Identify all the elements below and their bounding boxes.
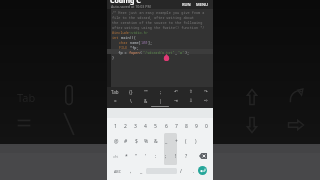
staticText: %	[144, 138, 149, 145]
staticText: Tab	[111, 89, 119, 95]
staticText: (	[140, 50, 143, 55]
staticText: );	[185, 50, 190, 55]
staticText: _	[140, 168, 143, 175]
button[interactable]: ⇨	[198, 96, 213, 105]
button[interactable]: 9	[191, 120, 201, 132]
button[interactable]: ⇩	[183, 96, 198, 105]
staticText: =	[114, 98, 117, 104]
staticText: the creation of the source to the follow…	[112, 20, 203, 25]
staticText: #include	[112, 30, 129, 35]
button[interactable]: %	[141, 135, 151, 147]
staticText: ;	[165, 153, 167, 160]
button[interactable]: @	[111, 135, 121, 147]
staticText: 3	[134, 123, 137, 130]
button[interactable]: $	[131, 135, 141, 147]
button[interactable]: ;	[153, 87, 168, 96]
button[interactable]: Enter	[198, 166, 207, 175]
staticText: fp =	[112, 50, 129, 55]
button[interactable]: MENU	[195, 1, 209, 8]
staticText: "w"	[178, 50, 185, 55]
button[interactable]: \	[123, 96, 138, 105]
button[interactable]: (	[181, 135, 191, 147]
button[interactable]: 6	[161, 120, 171, 132]
button[interactable]: ;	[161, 150, 171, 162]
button[interactable]: 3	[130, 120, 140, 132]
staticText: 2	[124, 123, 127, 130]
staticText: }	[112, 55, 115, 60]
button[interactable]: 0	[201, 120, 211, 132]
button[interactable]: ""	[138, 87, 153, 96]
button[interactable]: |	[153, 96, 168, 105]
staticText: '	[145, 153, 147, 160]
staticText: fopen	[129, 50, 140, 55]
staticText: "/sdcard/a.txt"	[143, 50, 175, 55]
staticText: _	[165, 138, 168, 145]
staticText: Coding C	[110, 0, 141, 5]
staticText: /	[180, 168, 182, 175]
staticText: ""	[144, 89, 148, 95]
staticText: main(){	[119, 35, 136, 40]
button[interactable]: )	[191, 135, 201, 147]
staticText: #	[124, 138, 128, 145]
button[interactable]: 1	[110, 120, 120, 132]
button[interactable]: ABC	[110, 165, 124, 177]
button[interactable]: _	[136, 165, 146, 177]
staticText: @	[114, 138, 119, 145]
staticText	[112, 45, 119, 50]
staticText: 0	[205, 123, 208, 130]
button[interactable]: _	[161, 135, 171, 147]
staticText: ABC	[114, 169, 121, 174]
button[interactable]: *	[121, 150, 131, 162]
button[interactable]: RUN	[181, 1, 192, 8]
staticText: |	[159, 98, 162, 104]
button[interactable]: 8	[181, 120, 191, 132]
staticText: 1	[114, 123, 117, 130]
staticText: :	[155, 153, 157, 160]
staticText: 6	[165, 123, 168, 130]
button[interactable]: 4	[140, 120, 150, 132]
staticText: *	[125, 153, 128, 160]
button[interactable]: &	[151, 135, 161, 147]
staticText: ];	[148, 40, 153, 45]
button[interactable]: =	[107, 96, 123, 105]
staticText: name[	[128, 40, 141, 45]
button[interactable]: 2	[120, 120, 130, 132]
button[interactable]: ↷	[198, 87, 213, 96]
staticText: {}	[129, 89, 133, 95]
staticText: ⇥	[174, 98, 178, 103]
button[interactable]: ,	[126, 165, 136, 177]
button[interactable]: ⇧	[183, 87, 198, 96]
button[interactable]: +	[171, 135, 181, 147]
button[interactable]: {}	[123, 87, 138, 96]
staticText: !	[175, 153, 177, 160]
button[interactable]: 5	[150, 120, 160, 132]
staticText: /* Here just an easy example you give fr…	[112, 10, 205, 15]
button[interactable]: &	[138, 96, 153, 105]
staticText: 9	[195, 123, 198, 130]
staticText: RUN	[182, 2, 191, 7]
staticText: 4	[144, 123, 147, 130]
button[interactable]: 7	[171, 120, 181, 132]
staticText: 7	[175, 123, 178, 130]
staticText: &	[154, 138, 158, 145]
button[interactable]: "	[131, 150, 141, 162]
staticText: int	[112, 35, 119, 40]
staticText: Auto-saved at 10:03 PM	[111, 4, 151, 9]
staticText: 100	[141, 40, 148, 45]
button[interactable]: =\<	[111, 150, 121, 162]
button[interactable]: #	[121, 135, 131, 147]
staticText: ⇨	[204, 98, 208, 103]
button[interactable]: .	[189, 165, 199, 177]
button[interactable]: ?	[181, 150, 191, 162]
button[interactable]: :	[151, 150, 161, 162]
staticText: file to the sdcard, after writing about	[112, 15, 194, 20]
button[interactable]: ↶	[168, 87, 183, 96]
button[interactable]: /	[176, 165, 186, 177]
button[interactable]: '	[141, 150, 151, 162]
button[interactable]: Backspace	[196, 150, 210, 162]
button[interactable]: ⇥	[168, 96, 183, 105]
button[interactable]: Tab	[107, 87, 123, 96]
button[interactable]: !	[171, 150, 181, 162]
